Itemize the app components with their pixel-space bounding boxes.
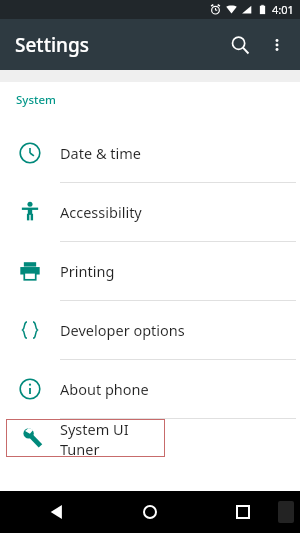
staticText: Date & time	[60, 143, 141, 163]
button[interactable]: Printing	[0, 242, 300, 301]
staticText: Settings	[15, 32, 89, 58]
button[interactable]: Back	[40, 495, 74, 529]
staticText: Printing	[60, 261, 115, 281]
button[interactable]: Date & time	[0, 124, 300, 183]
staticText: System	[16, 92, 56, 108]
staticText: System UI Tuner	[60, 419, 165, 457]
button[interactable]: Home	[133, 495, 167, 529]
staticText: 4:01	[272, 2, 294, 17]
button[interactable]: Developer options	[0, 301, 300, 360]
staticText: Developer options	[60, 320, 185, 340]
button[interactable]: Recent apps	[226, 495, 260, 529]
button[interactable]: System UI Tuner	[6, 419, 165, 457]
button[interactable]: More options	[260, 28, 294, 62]
button[interactable]: Accessibility	[0, 183, 300, 242]
staticText: Accessibility	[60, 202, 142, 222]
button[interactable]: Search	[220, 25, 260, 65]
button[interactable]: About phone	[0, 360, 300, 419]
staticText: About phone	[60, 379, 149, 399]
